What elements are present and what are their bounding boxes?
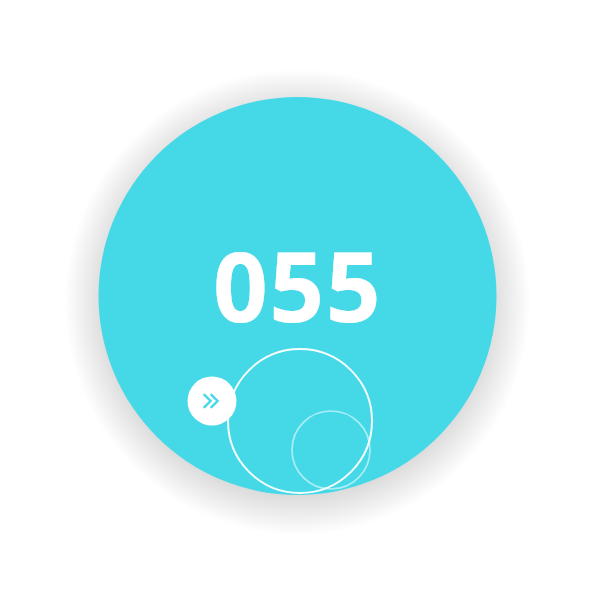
button[interactable]: Counter 055, continue [0, 0, 590, 590]
